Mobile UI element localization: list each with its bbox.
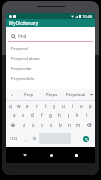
button[interactable]: ,: [21, 130, 30, 147]
button[interactable]: Home: [46, 150, 56, 160]
button[interactable]: w: [14, 101, 23, 110]
button[interactable]: c: [38, 120, 47, 130]
button[interactable]: .: [71, 130, 79, 147]
staticText: Perpendicle: [11, 76, 35, 82]
button[interactable]: m: [74, 120, 83, 130]
button[interactable]: g: [46, 110, 55, 120]
staticText: t: [45, 103, 47, 109]
staticText: x: [32, 122, 35, 128]
button[interactable]: k: [73, 110, 82, 120]
button[interactable]: find: [6, 27, 95, 42]
button[interactable]: Perpendicle: [6, 74, 95, 84]
button[interactable]: h: [55, 110, 64, 120]
staticText: i: [72, 103, 74, 109]
staticText: Perps: [46, 92, 58, 98]
button[interactable]: More suggestions: [88, 89, 95, 100]
staticText: a: [13, 112, 16, 118]
staticText: find: [18, 33, 27, 39]
button[interactable]: Perpender: [6, 64, 95, 74]
button[interactable]: ?123: [6, 130, 21, 147]
button[interactable]: o: [77, 101, 86, 110]
button[interactable]: Perpetual: [64, 89, 88, 100]
staticText: m: [76, 122, 81, 128]
staticText: Perp: [24, 92, 34, 98]
staticText: q: [9, 103, 12, 109]
staticText: w: [17, 103, 21, 109]
button[interactable]: t: [41, 101, 50, 110]
staticText: u: [62, 103, 65, 109]
staticText: s: [22, 112, 25, 118]
button[interactable]: q: [6, 101, 14, 110]
staticText: f: [41, 112, 43, 118]
staticText: Perpetual: [66, 92, 86, 98]
staticText: j: [68, 112, 70, 118]
staticText: c: [41, 122, 44, 128]
button[interactable]: y: [50, 101, 59, 110]
button[interactable]: Search: [83, 136, 89, 142]
button[interactable]: u: [59, 101, 68, 110]
staticText: n: [68, 122, 71, 128]
staticText: 10:46: [82, 14, 93, 19]
button[interactable]: f: [37, 110, 46, 120]
staticText: Perpend: [11, 46, 28, 52]
staticText: p: [89, 103, 92, 109]
staticText: Perpend alone: [11, 56, 40, 62]
staticText: y: [53, 103, 56, 109]
staticText: z: [23, 122, 26, 128]
staticText: ,: [25, 136, 27, 142]
button[interactable]: Perpend alone: [6, 54, 95, 64]
staticText: .: [74, 136, 76, 142]
staticText: l: [86, 112, 88, 118]
staticText: d: [31, 112, 34, 118]
button[interactable]: r: [32, 101, 41, 110]
button[interactable]: Google: [6, 89, 17, 100]
button[interactable]: Perpend: [6, 44, 95, 54]
staticText: MyDictionary: [9, 20, 39, 26]
button[interactable]: Perp: [17, 89, 40, 100]
button[interactable]: p: [86, 101, 95, 110]
button[interactable]: n: [65, 120, 74, 130]
staticText: k: [76, 112, 79, 118]
button[interactable]: i: [68, 101, 77, 110]
button[interactable]: b: [56, 120, 65, 130]
button[interactable]: Back: [20, 150, 30, 160]
button[interactable]: Emoji: [30, 130, 39, 147]
button[interactable]: MyDictionary: [6, 19, 95, 27]
button[interactable]: a: [10, 110, 19, 120]
button[interactable]: Backspace: [83, 120, 95, 130]
staticText: ?123: [10, 136, 18, 141]
button[interactable]: Recent apps: [71, 150, 81, 160]
staticText: e: [26, 103, 29, 109]
staticText: v: [50, 122, 53, 128]
button[interactable]: Perps: [40, 89, 64, 100]
button[interactable]: e: [23, 101, 32, 110]
staticText: o: [80, 103, 83, 109]
button[interactable]: s: [19, 110, 28, 120]
button[interactable]: d: [28, 110, 37, 120]
staticText: g: [49, 112, 52, 118]
button[interactable]: z: [19, 120, 29, 130]
button[interactable]: v: [47, 120, 56, 130]
staticText: r: [36, 103, 38, 109]
button[interactable]: j: [64, 110, 73, 120]
button[interactable]: l: [82, 110, 91, 120]
staticText: h: [58, 112, 61, 118]
button[interactable]: Shift: [6, 120, 19, 130]
staticText: Perpender: [11, 66, 32, 72]
button[interactable]: x: [29, 120, 38, 130]
staticText: b: [59, 122, 62, 128]
